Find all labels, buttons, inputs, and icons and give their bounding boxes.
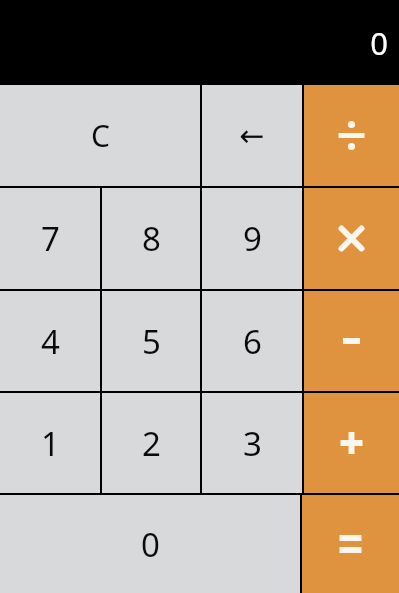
button[interactable]: 5: [102, 291, 200, 391]
staticText: 8: [142, 216, 161, 261]
staticText: 0: [141, 522, 160, 567]
button[interactable]: 1: [0, 393, 100, 493]
button[interactable]: C: [0, 85, 200, 186]
staticText: C: [91, 115, 110, 156]
button[interactable]: Plus: [304, 393, 399, 493]
button[interactable]: 3: [202, 393, 302, 493]
button[interactable]: ←: [202, 85, 302, 186]
button[interactable]: 2: [102, 393, 200, 493]
button[interactable]: 6: [202, 291, 302, 391]
button[interactable]: Multiply: [304, 188, 399, 289]
button[interactable]: Equals: [302, 495, 399, 593]
staticText: ←: [239, 118, 265, 153]
button[interactable]: 7: [0, 188, 100, 289]
button[interactable]: 8: [102, 188, 200, 289]
button[interactable]: Divide: [304, 85, 399, 186]
button[interactable]: Minus: [304, 291, 399, 391]
button[interactable]: 4: [0, 291, 100, 391]
staticText: 5: [142, 319, 161, 364]
staticText: 3: [243, 421, 262, 466]
staticText: 6: [243, 319, 262, 364]
staticText: 4: [41, 319, 60, 364]
staticText: 9: [243, 216, 262, 261]
staticText: 7: [41, 216, 60, 261]
staticText: 2: [142, 421, 161, 466]
staticText: 0: [370, 22, 388, 64]
button[interactable]: 9: [202, 188, 302, 289]
staticText: 1: [41, 421, 60, 466]
button[interactable]: 0: [0, 495, 300, 593]
